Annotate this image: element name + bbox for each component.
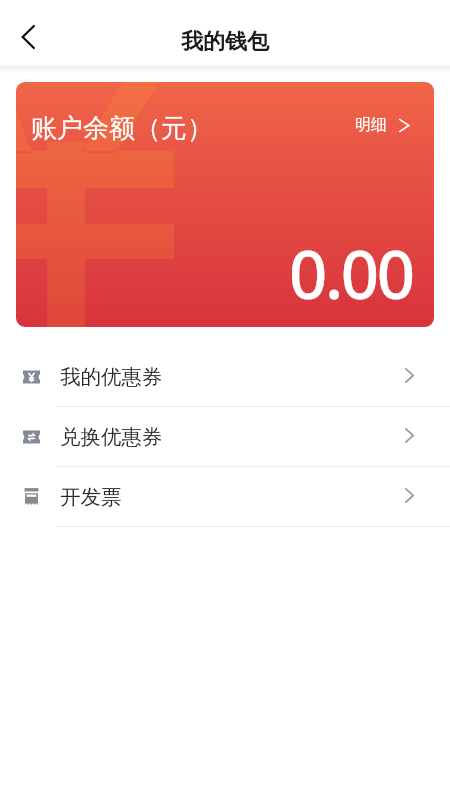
button[interactable]: 账户余额（元） — [16, 82, 434, 327]
staticText: 兑换优惠券 — [60, 424, 163, 450]
button[interactable]: 明细 — [355, 115, 410, 135]
staticText: 0.00 — [289, 227, 413, 318]
button[interactable]: 我的优惠券 — [0, 347, 450, 406]
staticText: 账户余额（元） — [31, 112, 213, 145]
staticText: 我的钱包 — [181, 28, 269, 56]
button[interactable]: 兑换优惠券 — [0, 407, 450, 466]
button[interactable]: Back — [5, 14, 51, 60]
staticText: 我的优惠券 — [60, 364, 163, 390]
staticText: 明细 — [355, 115, 387, 135]
staticText: 开发票 — [60, 484, 122, 510]
button[interactable]: 开发票 — [0, 467, 450, 526]
